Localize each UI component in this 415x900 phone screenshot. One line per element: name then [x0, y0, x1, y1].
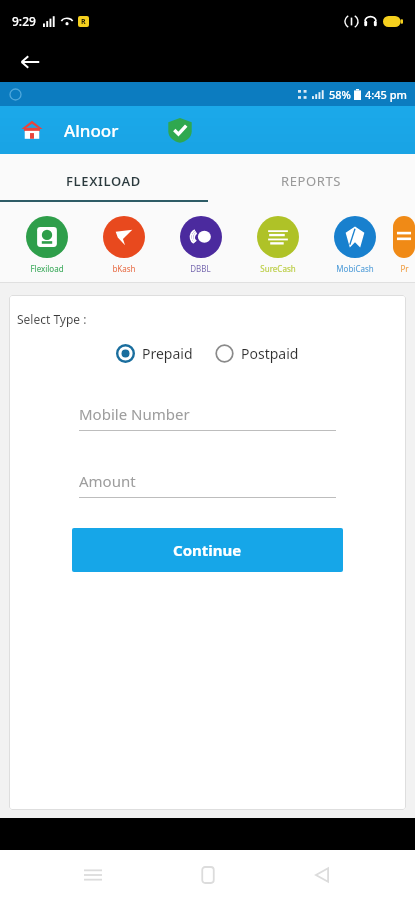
staticText: Select Type : [17, 311, 87, 327]
button[interactable]: Home [186, 853, 230, 897]
staticText: Pr [400, 263, 409, 274]
button[interactable]: FLEXILOAD [0, 154, 207, 208]
button[interactable]: Back [300, 853, 344, 897]
staticText: REPORTS [281, 172, 341, 190]
staticText: Flexiload [30, 263, 64, 274]
staticText: DBBL [190, 263, 211, 274]
staticText: SureCash [260, 263, 296, 274]
staticText: Prepaid [142, 344, 193, 363]
button[interactable]: Amount [79, 471, 336, 498]
button[interactable]: bKash [85, 208, 162, 282]
button[interactable]: Verified [165, 115, 195, 145]
staticText: 9:29 [12, 13, 36, 29]
staticText: Continue [173, 540, 242, 560]
staticText: FLEXILOAD [66, 172, 141, 190]
staticText: 58% [329, 87, 351, 102]
button[interactable]: DBBL [162, 208, 239, 282]
button[interactable]: Recents [71, 853, 115, 897]
staticText: Postpaid [241, 344, 299, 363]
staticText: R [81, 17, 86, 27]
staticText: Amount [79, 471, 136, 491]
button[interactable]: Home [18, 116, 46, 144]
staticText: Mobile Number [79, 404, 190, 424]
button[interactable]: SureCash [239, 208, 316, 282]
staticText: Alnoor [64, 119, 119, 142]
staticText: 4:45 pm [365, 87, 407, 102]
button[interactable]: Flexiload [8, 208, 85, 282]
button[interactable]: Back [14, 46, 46, 78]
button[interactable]: Postpaid [213, 341, 301, 366]
button[interactable]: MobiCash [316, 208, 393, 282]
staticText: bKash [112, 263, 136, 274]
button[interactable]: Mobile Number [79, 404, 336, 431]
button[interactable]: Continue [72, 528, 343, 572]
button[interactable]: Pr [393, 208, 415, 282]
button[interactable]: REPORTS [207, 154, 415, 208]
button[interactable]: Prepaid [114, 341, 195, 366]
staticText: MobiCash [336, 263, 374, 274]
